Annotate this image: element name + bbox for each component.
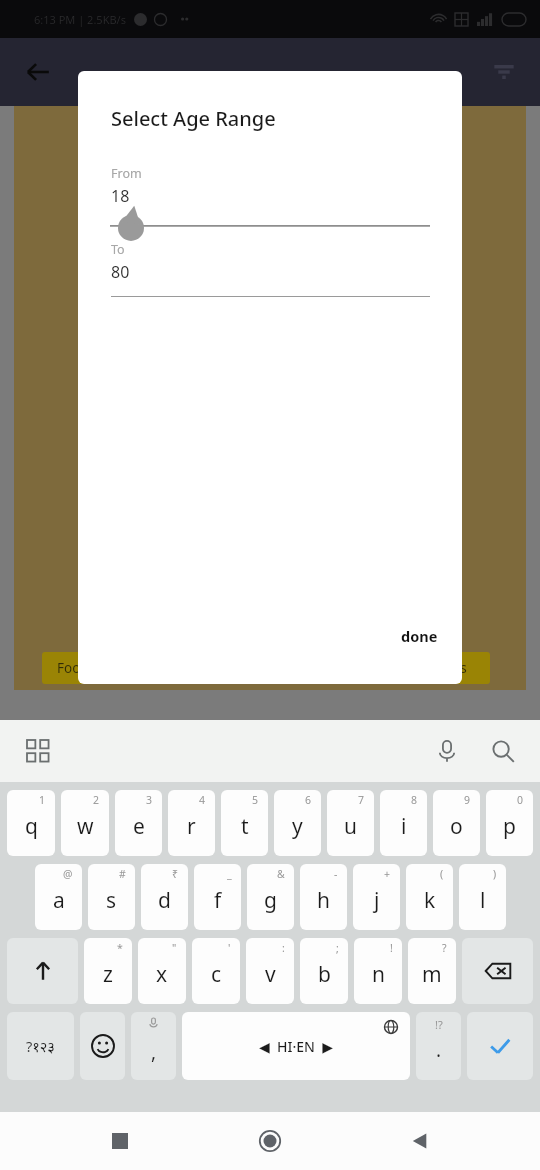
button[interactable]: ◀ HI·EN ▶ <box>182 1012 410 1080</box>
staticText: x <box>156 960 168 989</box>
staticText: Foobball <box>57 659 112 677</box>
staticText: " <box>172 941 177 955</box>
staticText: @ <box>63 867 73 881</box>
staticText: 3 <box>146 793 153 807</box>
staticText: 6:13 PM | 2.5KB/s <box>34 12 126 27</box>
staticText: n <box>372 960 385 989</box>
button[interactable]: * <box>84 938 132 1004</box>
button[interactable]: Home <box>240 1112 300 1170</box>
button[interactable] <box>78 213 462 241</box>
staticText: & <box>277 867 285 881</box>
staticText: To <box>111 241 125 258</box>
staticText: * <box>117 941 123 955</box>
button[interactable]: @ <box>35 864 82 930</box>
button[interactable]: Emoji <box>80 1012 125 1080</box>
staticText: 0 <box>517 793 524 807</box>
button[interactable]: 1 <box>7 790 55 856</box>
button[interactable]: Shift <box>7 938 78 1004</box>
staticText: 80 <box>111 261 130 283</box>
staticText: e <box>133 812 145 841</box>
staticText: ₹ <box>172 867 179 881</box>
staticText: + <box>384 867 391 881</box>
staticText: ; <box>336 941 339 955</box>
button[interactable]: - <box>300 864 347 930</box>
button[interactable]: # <box>88 864 135 930</box>
staticText: a <box>53 886 65 915</box>
staticText: v <box>265 960 276 989</box>
button[interactable]: Readding Books <box>340 652 490 684</box>
button[interactable]: 4 <box>168 790 215 856</box>
staticText: p <box>503 812 516 841</box>
staticText: 6 <box>305 793 312 807</box>
button[interactable]: Menu <box>16 729 60 773</box>
staticText: z <box>103 960 113 989</box>
staticText: !? <box>435 1017 443 1032</box>
staticText: # <box>119 867 126 881</box>
staticText: m <box>422 960 442 989</box>
button[interactable]: ! <box>354 938 402 1004</box>
button[interactable]: 0 <box>486 790 533 856</box>
button[interactable]: & <box>247 864 294 930</box>
button[interactable]: Foobball <box>42 652 127 684</box>
staticText: d <box>158 886 171 915</box>
button[interactable]: Voice input <box>424 728 470 774</box>
staticText: k <box>424 886 436 915</box>
button[interactable]: ?१२३ <box>7 1012 74 1080</box>
button[interactable]: ; <box>300 938 348 1004</box>
staticText: ?१२३ <box>26 1036 55 1056</box>
staticText: ! <box>390 941 393 955</box>
staticText: Readding Books <box>364 659 467 677</box>
button[interactable]: ' <box>192 938 240 1004</box>
button[interactable]: Back <box>14 48 62 96</box>
button[interactable]: _ <box>194 864 241 930</box>
button[interactable]: ? <box>408 938 456 1004</box>
button[interactable]: 7 <box>327 790 374 856</box>
button[interactable]: !? <box>416 1012 461 1080</box>
button[interactable]: ) <box>459 864 506 930</box>
button[interactable]: 2 <box>61 790 109 856</box>
staticText: 18 <box>111 185 130 207</box>
staticText: ( <box>440 867 444 881</box>
staticText: 7 <box>358 793 365 807</box>
button[interactable]: Recents <box>90 1112 150 1170</box>
button[interactable]: 8 <box>380 790 427 856</box>
staticText: t <box>241 812 249 841</box>
staticText: From <box>111 165 142 182</box>
button[interactable]: 5 <box>221 790 268 856</box>
button[interactable]: done <box>377 616 462 656</box>
staticText: q <box>25 812 38 841</box>
button[interactable]: ( <box>406 864 453 930</box>
button[interactable]: 6 <box>274 790 321 856</box>
staticText: Select Age Range <box>111 105 276 132</box>
button[interactable]: Filter <box>480 48 528 96</box>
button[interactable]: 3 <box>115 790 162 856</box>
staticText: _ <box>227 867 232 881</box>
button[interactable]: " <box>138 938 186 1004</box>
button[interactable]: , <box>131 1012 176 1080</box>
staticText: j <box>374 886 380 915</box>
button[interactable]: Enter <box>467 1012 533 1080</box>
button[interactable]: : <box>246 938 294 1004</box>
button[interactable]: Backspace <box>462 938 533 1004</box>
staticText: 9 <box>464 793 471 807</box>
staticText: l <box>480 886 486 915</box>
staticText: h <box>317 886 330 915</box>
staticText: - <box>334 867 338 881</box>
staticText: 4 <box>199 793 206 807</box>
staticText: o <box>450 812 463 841</box>
button[interactable]: + <box>353 864 400 930</box>
button[interactable]: Search <box>480 728 526 774</box>
staticText: f <box>214 886 222 915</box>
staticText: 2 <box>93 793 100 807</box>
staticText: b <box>318 960 331 989</box>
button[interactable]: Back <box>390 1112 450 1170</box>
staticText: 1 <box>39 793 46 807</box>
staticText: r <box>187 812 196 841</box>
button[interactable]: 9 <box>433 790 480 856</box>
staticText: , <box>151 1039 157 1065</box>
button[interactable]: ₹ <box>141 864 188 930</box>
